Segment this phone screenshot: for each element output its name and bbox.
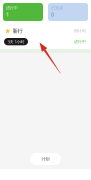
button[interactable]: 已完成 [48, 3, 88, 21]
staticText: 1 [6, 11, 9, 18]
button[interactable]: 计划 [30, 153, 61, 165]
staticText: 进行中 [6, 5, 18, 10]
staticText: 0 [51, 11, 54, 18]
staticText: 倒计时 [74, 28, 86, 33]
staticText: 3天 1小时 [7, 39, 24, 44]
staticText: 已完成 [51, 5, 63, 10]
staticText: 新行 [12, 28, 22, 34]
staticText: 进行中 [74, 39, 86, 44]
button[interactable]: 进行中 [3, 3, 43, 21]
staticText: 计划 [41, 156, 49, 161]
